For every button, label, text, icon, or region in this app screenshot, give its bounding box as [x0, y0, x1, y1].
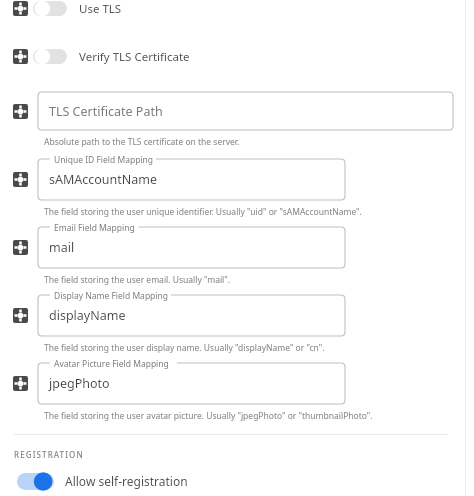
- staticText: sAMAccountName: [49, 171, 158, 188]
- button[interactable]: Avatar Picture Field Mapping: [38, 363, 345, 404]
- staticText: The field storing the user avatar pictur…: [44, 410, 373, 422]
- staticText: mail: [49, 239, 75, 256]
- staticText: The field storing the user email. Usuall…: [44, 274, 231, 286]
- staticText: Absolute path to the TLS certificate on …: [44, 136, 240, 148]
- staticText: Allow self-registration: [65, 473, 188, 489]
- other: Use TLS: [33, 1, 67, 16]
- staticText: jpegPhoto: [49, 375, 110, 392]
- staticText: Unique ID Field Mapping: [54, 154, 154, 166]
- staticText: Avatar Picture Field Mapping: [54, 358, 169, 370]
- staticText: displayName: [49, 307, 126, 324]
- button[interactable]: Use TLS: [0, 0, 474, 17]
- button[interactable]: Verify TLS Certificate: [0, 48, 474, 65]
- staticText: Email Field Mapping: [54, 222, 135, 234]
- button[interactable]: Unique ID Field Mapping: [38, 159, 345, 200]
- button[interactable]: TLS Certificate Path: [38, 92, 453, 130]
- other: Verify TLS Certificate: [33, 49, 67, 64]
- button[interactable]: Email Field Mapping: [38, 227, 345, 268]
- staticText: Use TLS: [79, 1, 122, 17]
- staticText: TLS Certificate Path: [49, 103, 163, 120]
- button[interactable]: Display Name Field Mapping: [38, 295, 345, 336]
- staticText: Display Name Field Mapping: [54, 290, 169, 302]
- other: Allow self-registration: [17, 473, 54, 490]
- staticText: Verify TLS Certificate: [79, 49, 190, 65]
- staticText: The field storing the user unique identi…: [44, 206, 362, 218]
- button[interactable]: Allow self-registration: [0, 471, 474, 491]
- staticText: The field storing the user display name.…: [44, 342, 325, 354]
- staticText: REGISTRATION: [14, 449, 84, 460]
